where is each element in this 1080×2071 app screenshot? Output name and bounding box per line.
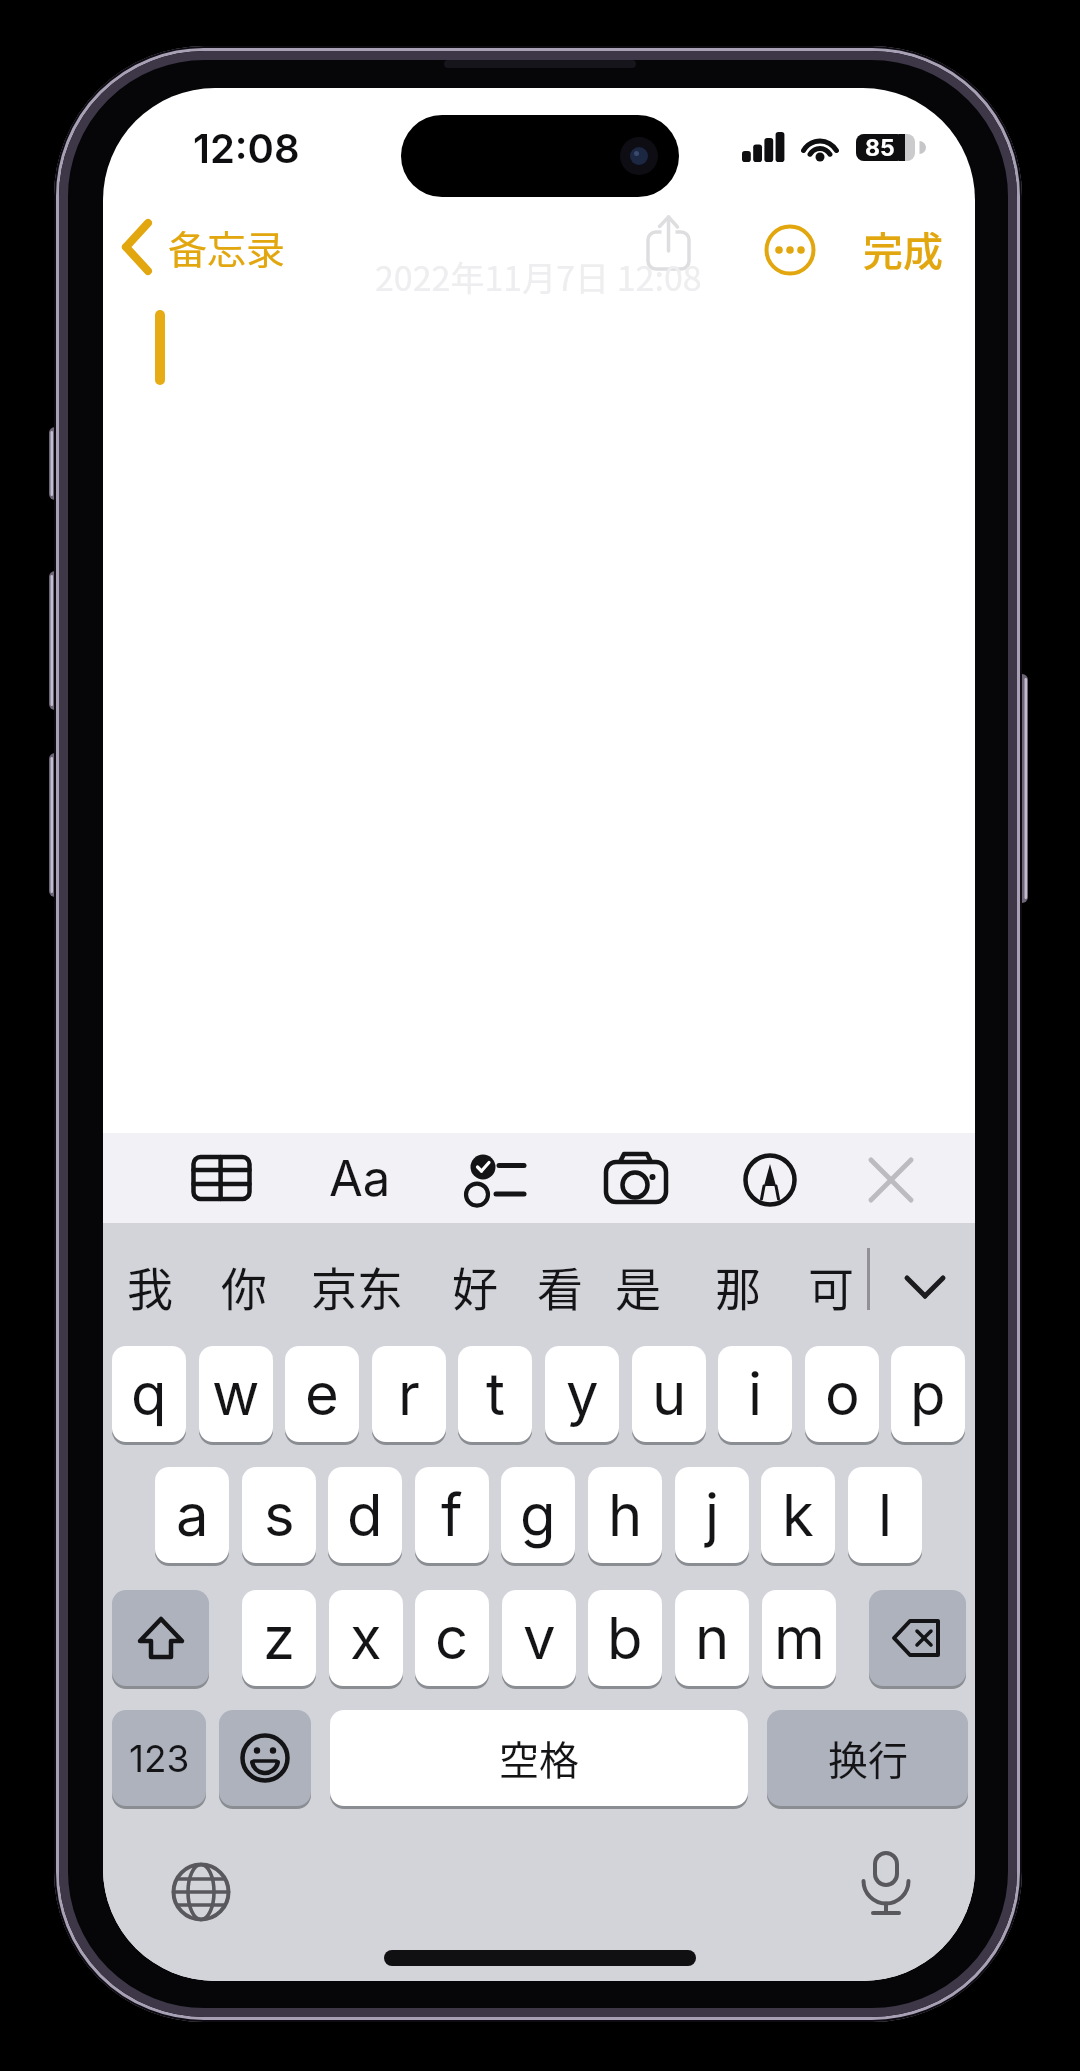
button[interactable]: a — [155, 1467, 229, 1563]
button[interactable]: 京东 — [103, 1226, 617, 1346]
button[interactable]: k — [761, 1467, 835, 1563]
staticText: 那 — [715, 1253, 761, 1320]
button[interactable]: j — [675, 1467, 749, 1563]
staticText: 12:08 — [193, 124, 300, 172]
staticText: z — [263, 1603, 296, 1673]
staticText: 我 — [127, 1253, 173, 1320]
button[interactable]: p — [891, 1346, 965, 1442]
button[interactable]: l — [848, 1467, 922, 1563]
button[interactable]: 那 — [478, 1226, 975, 1346]
button[interactable] — [603, 1145, 673, 1215]
staticText: x — [350, 1603, 382, 1673]
staticText: s — [264, 1480, 295, 1550]
staticText: l — [878, 1480, 893, 1550]
button[interactable]: h — [588, 1467, 662, 1563]
staticText: b — [607, 1603, 643, 1673]
button[interactable]: 备忘录 — [103, 187, 487, 307]
staticText: j — [705, 1480, 720, 1550]
staticText: 好 — [452, 1253, 498, 1320]
button[interactable] — [735, 1145, 805, 1215]
button[interactable]: e — [285, 1346, 359, 1442]
staticText: 换行 — [828, 1729, 908, 1787]
button[interactable]: n — [675, 1590, 749, 1686]
staticText: 123 — [129, 1736, 190, 1781]
button[interactable]: m — [762, 1590, 836, 1686]
staticText: h — [608, 1480, 643, 1550]
staticText: q — [131, 1359, 167, 1429]
button[interactable]: 换行 — [767, 1710, 968, 1806]
button[interactable]: u — [632, 1346, 706, 1442]
staticText: y — [566, 1359, 599, 1429]
button[interactable]: 看 — [300, 1226, 820, 1346]
staticText: 可 — [808, 1253, 854, 1320]
button[interactable]: i — [718, 1346, 792, 1442]
button[interactable]: y — [545, 1346, 619, 1442]
button[interactable]: r — [372, 1346, 446, 1442]
staticText: g — [520, 1480, 556, 1550]
staticText: i — [748, 1359, 763, 1429]
button[interactable]: 123 — [112, 1710, 206, 1806]
button[interactable]: v — [502, 1590, 576, 1686]
staticText: f — [441, 1480, 463, 1550]
staticText: r — [398, 1359, 420, 1429]
staticText: c — [435, 1603, 469, 1673]
staticText: u — [652, 1359, 687, 1429]
button[interactable]: d — [328, 1467, 402, 1563]
button[interactable]: z — [242, 1590, 316, 1686]
staticText: 2022年11月7日 12:08 — [375, 252, 702, 301]
button[interactable]: x — [329, 1590, 403, 1686]
staticText: d — [347, 1480, 383, 1550]
button[interactable] — [153, 1844, 249, 1940]
staticText: 备忘录 — [168, 219, 286, 275]
staticText: p — [910, 1359, 946, 1429]
staticText: 你 — [221, 1253, 267, 1320]
button[interactable] — [869, 1590, 966, 1686]
staticText: m — [774, 1603, 825, 1673]
button[interactable]: t — [458, 1346, 532, 1442]
button[interactable]: f — [415, 1467, 489, 1563]
button[interactable]: c — [415, 1590, 489, 1686]
staticText: w — [212, 1359, 260, 1429]
button[interactable]: 完成 — [643, 189, 975, 309]
staticText: 是 — [615, 1253, 661, 1320]
button[interactable]: 我 — [103, 1226, 410, 1346]
button[interactable]: 空格 — [330, 1710, 748, 1806]
button[interactable] — [465, 1145, 535, 1215]
button[interactable]: g — [501, 1467, 575, 1563]
button[interactable]: 你 — [103, 1226, 504, 1346]
staticText: v — [523, 1603, 556, 1673]
staticText: 85 — [865, 134, 895, 162]
button[interactable]: 是 — [378, 1226, 898, 1346]
staticText: Aa — [329, 1149, 391, 1208]
button[interactable]: 好 — [215, 1226, 735, 1346]
staticText: a — [176, 1480, 209, 1550]
button[interactable]: s — [242, 1467, 316, 1563]
button[interactable]: q — [112, 1346, 186, 1442]
button[interactable] — [856, 1145, 926, 1215]
button[interactable] — [112, 1590, 209, 1686]
staticText: 京东 — [311, 1253, 403, 1320]
staticText: 完成 — [863, 220, 943, 278]
staticText: k — [782, 1480, 814, 1550]
button[interactable] — [838, 1835, 934, 1931]
button[interactable] — [219, 1710, 311, 1806]
button[interactable]: o — [805, 1346, 879, 1442]
staticText: o — [825, 1359, 860, 1429]
staticText: 看 — [537, 1253, 583, 1320]
staticText: 空格 — [499, 1729, 579, 1787]
staticText: n — [695, 1603, 730, 1673]
button[interactable]: 可 — [571, 1226, 975, 1346]
button[interactable]: Aa — [103, 1118, 620, 1238]
staticText: e — [305, 1359, 339, 1429]
staticText: t — [486, 1359, 505, 1429]
button[interactable] — [188, 1145, 258, 1215]
button[interactable]: b — [588, 1590, 662, 1686]
button[interactable]: w — [199, 1346, 273, 1442]
